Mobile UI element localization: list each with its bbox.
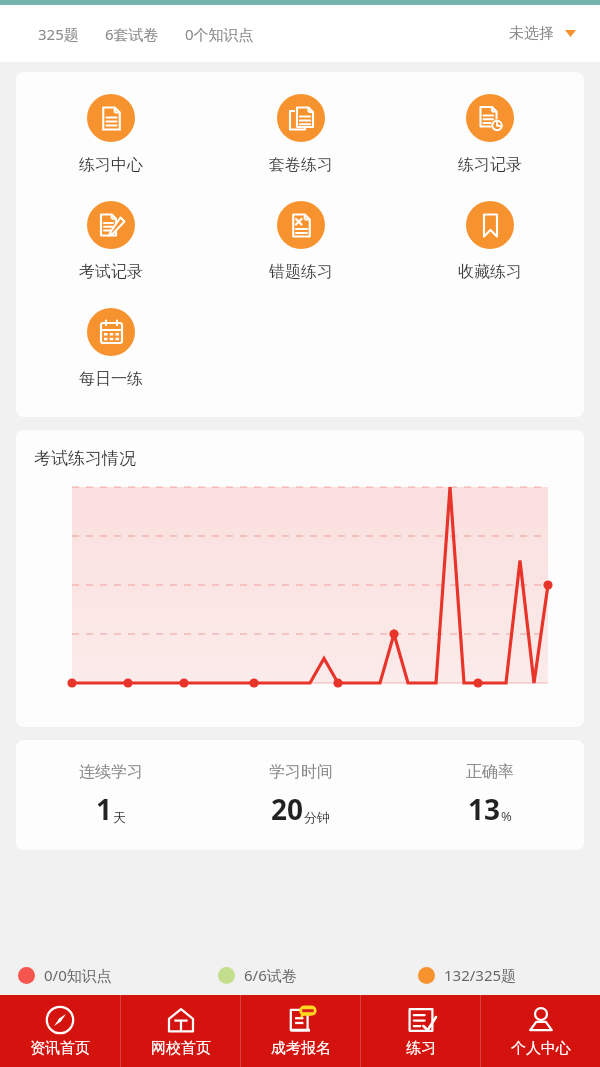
staticText: 0/0知识点 [44, 965, 112, 985]
staticText: 132/325题 [444, 965, 517, 985]
staticText: 0个知识点 [185, 24, 254, 44]
staticText: 6/6试卷 [244, 965, 297, 985]
button[interactable]: 未选择 [509, 24, 576, 43]
button[interactable]: 套卷练习 [263, 92, 339, 177]
button[interactable]: 每日一练 [73, 306, 149, 391]
staticText: 13 [468, 790, 501, 828]
staticText: 考试练习情况 [34, 448, 136, 469]
staticText: 正确率 [466, 762, 514, 782]
other: Select [565, 30, 576, 37]
button[interactable]: 练习中心 [73, 92, 149, 177]
button[interactable]: 正确率 [395, 762, 584, 828]
staticText: 连续学习 [79, 762, 143, 782]
button[interactable]: 个人中心 [481, 995, 600, 1067]
staticText: 网校首页 [151, 1039, 211, 1058]
staticText: 1 [96, 790, 113, 828]
staticText: 学习时间 [269, 762, 333, 782]
staticText: 天 [113, 809, 126, 825]
staticText: 练习中心 [79, 155, 143, 175]
staticText: 练习 [406, 1039, 436, 1058]
staticText: 6套试卷 [105, 24, 159, 44]
staticText: 收藏练习 [458, 262, 522, 282]
button[interactable]: 练习 [361, 995, 480, 1067]
staticText: 成考报名 [271, 1039, 331, 1058]
staticText: 资讯首页 [30, 1039, 90, 1058]
staticText: 分钟 [304, 809, 330, 825]
button[interactable]: 连续学习 [16, 762, 206, 828]
button[interactable]: 资讯首页 [0, 995, 120, 1067]
staticText: 考试记录 [79, 262, 143, 282]
staticText: 325题 [38, 24, 79, 44]
button[interactable]: 学习时间 [206, 762, 395, 828]
button[interactable]: 练习记录 [452, 92, 528, 177]
staticText: 错题练习 [269, 262, 333, 282]
button[interactable]: 成考报名 [241, 995, 360, 1067]
button[interactable]: 收藏练习 [452, 199, 528, 284]
staticText: 套卷练习 [269, 155, 333, 175]
button[interactable]: 网校首页 [121, 995, 240, 1067]
staticText: 未选择 [509, 24, 554, 43]
button[interactable]: 考试记录 [73, 199, 149, 284]
staticText: 每日一练 [79, 369, 143, 389]
button[interactable]: 错题练习 [263, 199, 339, 284]
staticText: 20 [271, 790, 304, 828]
staticText: 个人中心 [511, 1039, 571, 1058]
staticText: 练习记录 [458, 155, 522, 175]
staticText: % [501, 807, 512, 825]
